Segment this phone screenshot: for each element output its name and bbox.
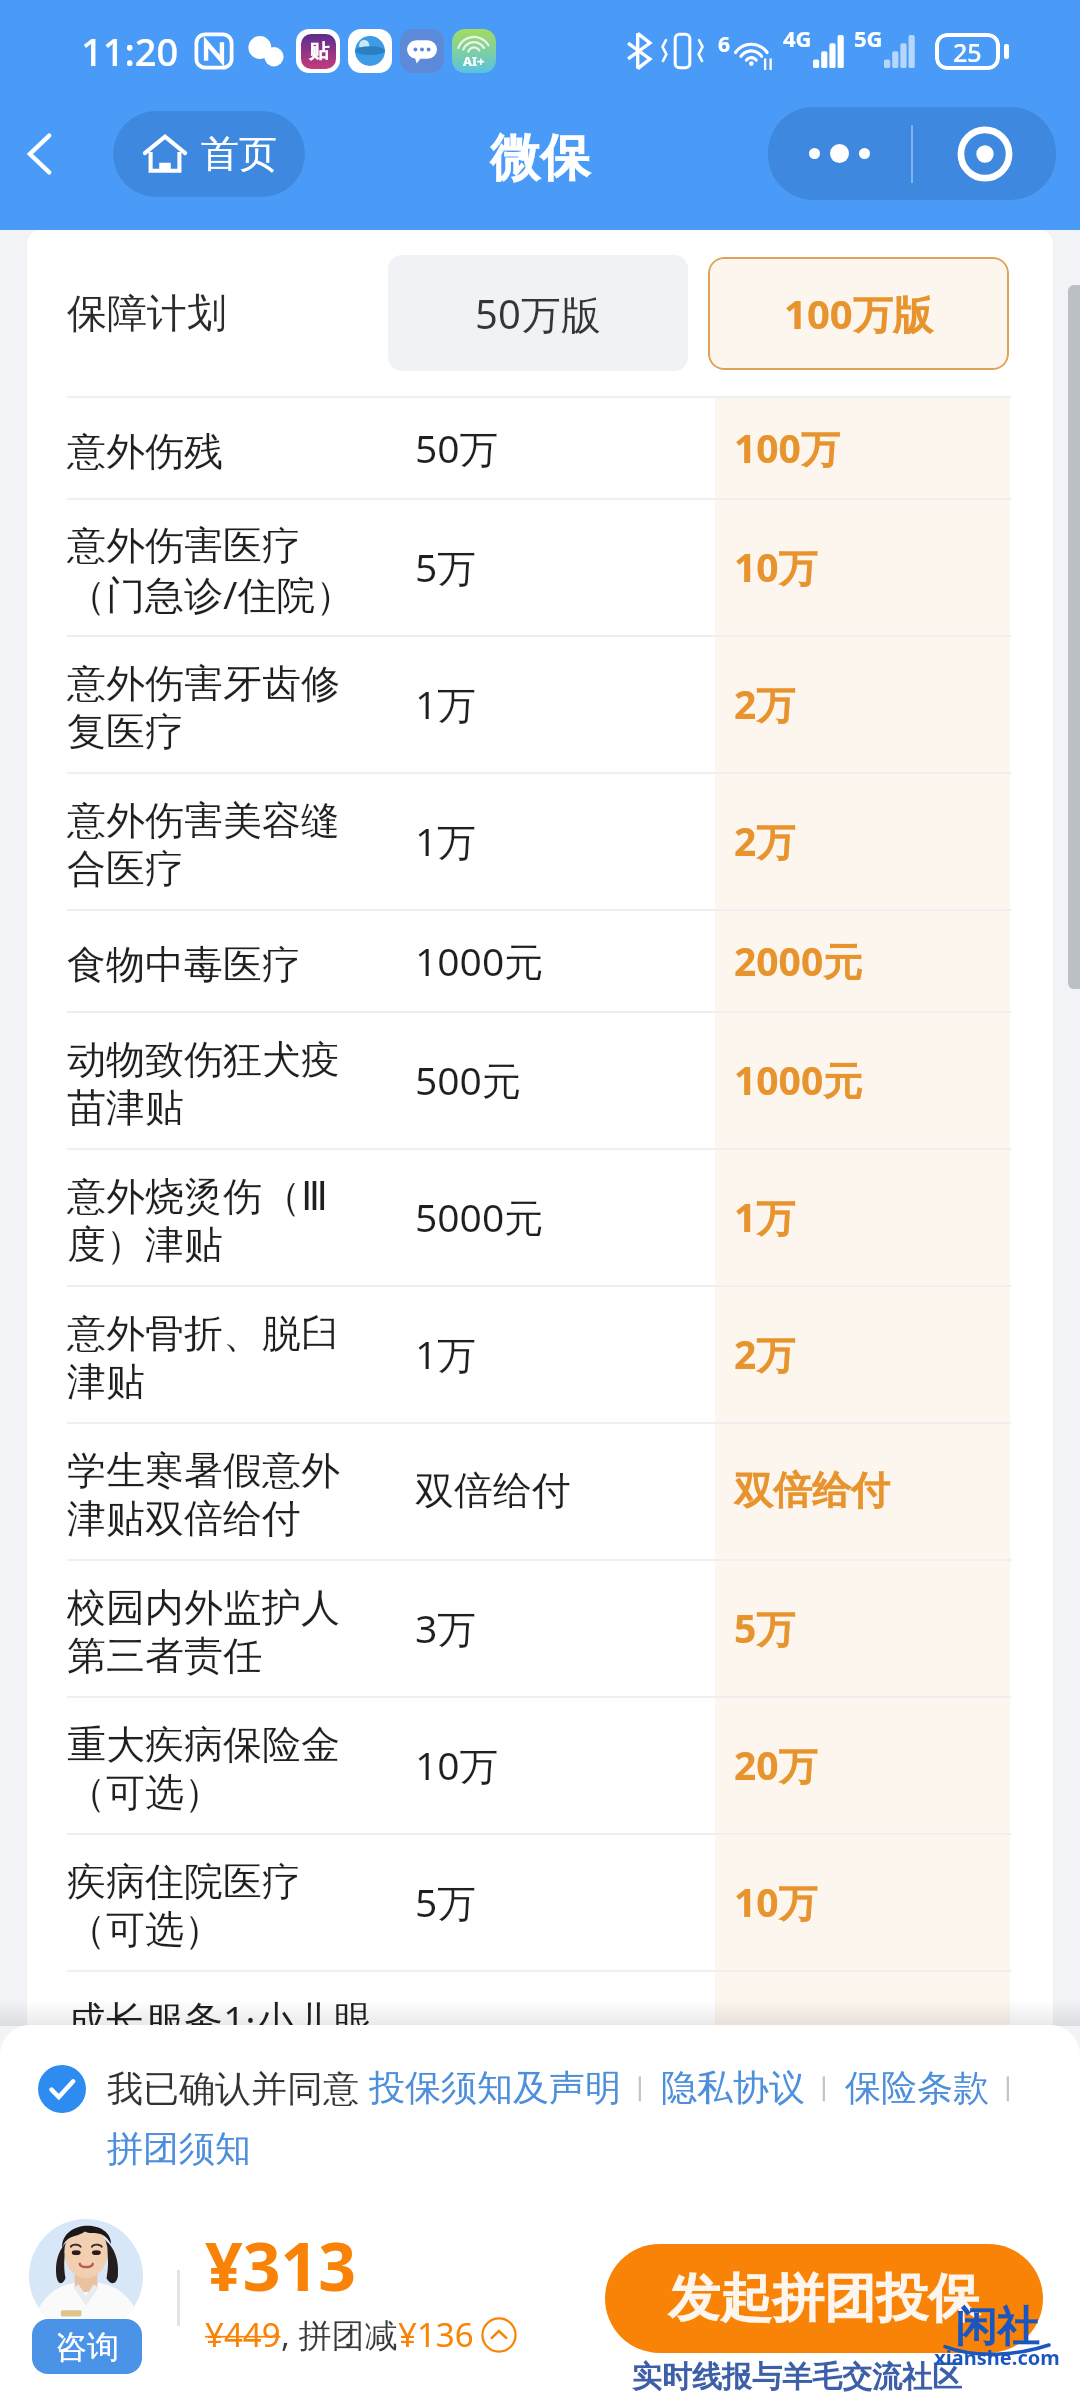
staticText: 微保 bbox=[490, 127, 590, 190]
button[interactable]: 拼团须知 bbox=[107, 2126, 251, 2171]
staticText: 3万 bbox=[415, 1601, 705, 1654]
staticText: 丨 bbox=[805, 2070, 845, 2106]
staticText: 10万 bbox=[734, 540, 1024, 593]
staticText: 2万 bbox=[734, 814, 1024, 867]
staticText: 10万 bbox=[734, 1875, 1024, 1928]
staticText: 首页 bbox=[201, 130, 277, 178]
staticText: 咨询 bbox=[55, 2327, 119, 2367]
staticText: 动物致伤狂犬疫 苗津贴 bbox=[67, 1035, 417, 1132]
staticText: 1万 bbox=[415, 814, 705, 867]
button[interactable]: 发起拼团投保 bbox=[605, 2244, 1043, 2353]
staticText: 重大疾病保险金 （可选） bbox=[67, 1720, 417, 1817]
staticText: 4G bbox=[783, 23, 812, 53]
staticText: 50万版 bbox=[475, 286, 601, 341]
staticText: 意外伤残 bbox=[67, 427, 417, 476]
button[interactable]: 学生寒暑假意外 津贴双倍给付 bbox=[27, 1422, 1053, 1559]
staticText: 双倍给付 bbox=[415, 1466, 705, 1515]
button[interactable]: 意外伤残 bbox=[27, 396, 1053, 498]
staticText: 50万 bbox=[415, 421, 705, 474]
button[interactable]: 首页 bbox=[113, 111, 305, 197]
staticText: 500元 bbox=[415, 1053, 705, 1106]
staticText: 丨 bbox=[989, 2070, 1022, 2106]
staticText: , 拼团减 bbox=[281, 2312, 398, 2357]
staticText: xianshe.com bbox=[934, 2344, 1060, 2371]
staticText: 意外伤害医疗 （门急诊/住院） bbox=[67, 521, 417, 620]
button[interactable]: 隐私协议 bbox=[661, 2065, 805, 2110]
staticText: 5万 bbox=[415, 1875, 705, 1928]
staticText: 6 bbox=[718, 30, 731, 59]
staticText: 5G bbox=[854, 23, 883, 53]
staticText: 贴 bbox=[309, 39, 329, 64]
button[interactable]: Consult advisor bbox=[29, 2219, 145, 2374]
staticText: 意外伤害牙齿修 复医疗 bbox=[67, 659, 417, 756]
button[interactable]: 意外伤害美容缝 合医疗 bbox=[27, 772, 1053, 909]
staticText: 疾病住院医疗 （可选） bbox=[67, 1857, 417, 1954]
staticText: 5万 bbox=[734, 1601, 1024, 1654]
button[interactable]: 意外骨折、脱臼 津贴 bbox=[27, 1285, 1053, 1422]
staticText: 意外伤害美容缝 合医疗 bbox=[67, 796, 417, 893]
staticText: 双倍给付 bbox=[734, 1466, 1024, 1515]
staticText: 11:20 bbox=[81, 25, 179, 77]
staticText: 1万 bbox=[415, 677, 705, 730]
staticText: AI+ bbox=[463, 52, 485, 70]
button[interactable]: Agree to terms bbox=[38, 2065, 86, 2113]
button[interactable]: 保险条款 bbox=[845, 2065, 989, 2110]
staticText: 保障计划 bbox=[67, 288, 227, 338]
button[interactable]: 意外烧烫伤（Ⅲ 度）津贴 bbox=[27, 1148, 1053, 1285]
staticText: 20万 bbox=[734, 1738, 1024, 1791]
staticText: 意外骨折、脱臼 津贴 bbox=[67, 1309, 417, 1406]
staticText: 2万 bbox=[734, 1327, 1024, 1380]
button[interactable]: 校园内外监护人 第三者责任 bbox=[27, 1559, 1053, 1696]
staticText: 丨 bbox=[621, 2070, 661, 2106]
staticText: 100万版 bbox=[784, 286, 933, 341]
button[interactable]: 投保须知及声明 bbox=[369, 2065, 621, 2110]
staticText: 发起拼团投保 bbox=[668, 2266, 980, 2332]
staticText: 意外烧烫伤（Ⅲ 度）津贴 bbox=[67, 1172, 417, 1269]
button[interactable]: 100万版 bbox=[708, 257, 1009, 370]
button[interactable]: Close mini program bbox=[913, 107, 1056, 200]
button[interactable]: 疾病住院医疗 （可选） bbox=[27, 1833, 1053, 1970]
staticText: 食物中毒医疗 bbox=[67, 940, 417, 989]
button[interactable]: More options bbox=[768, 107, 911, 200]
button[interactable]: 意外伤害牙齿修 复医疗 bbox=[27, 635, 1053, 772]
staticText: 成长服务1·小儿眼 科 bbox=[67, 1992, 437, 2093]
button[interactable]: 动物致伤狂犬疫 苗津贴 bbox=[27, 1011, 1053, 1148]
staticText: 实时线报与羊毛交流社区 bbox=[632, 2358, 962, 2396]
staticText: 100万 bbox=[734, 421, 1024, 474]
button[interactable]: 意外伤害医疗 （门急诊/住院） bbox=[27, 498, 1053, 635]
staticText: 10万 bbox=[415, 1738, 705, 1791]
button[interactable]: 50万版 bbox=[388, 255, 688, 371]
staticText: 5万 bbox=[415, 540, 705, 593]
staticText: 2000元 bbox=[734, 934, 1024, 987]
button[interactable]: 食物中毒医疗 bbox=[27, 909, 1053, 1011]
staticText: 1万 bbox=[415, 1327, 705, 1380]
staticText: 2万 bbox=[734, 677, 1024, 730]
staticText: ¥136 bbox=[398, 2312, 474, 2357]
button[interactable]: 重大疾病保险金 （可选） bbox=[27, 1696, 1053, 1833]
staticText: ¥449 bbox=[205, 2312, 281, 2357]
staticText: ¥313 bbox=[205, 2220, 357, 2310]
staticText: 1000元 bbox=[734, 1053, 1024, 1106]
staticText: 25 bbox=[953, 35, 982, 69]
button[interactable]: Back bbox=[8, 122, 72, 186]
staticText: 闲社 bbox=[955, 2301, 1039, 2354]
staticText: 1000元 bbox=[415, 934, 705, 987]
staticText: 5000元 bbox=[415, 1190, 705, 1243]
staticText: 1万 bbox=[734, 1190, 1024, 1243]
staticText: 校园内外监护人 第三者责任 bbox=[67, 1583, 417, 1680]
staticText: 我已确认并同意 bbox=[107, 2063, 369, 2112]
staticText: 学生寒暑假意外 津贴双倍给付 bbox=[67, 1446, 417, 1543]
